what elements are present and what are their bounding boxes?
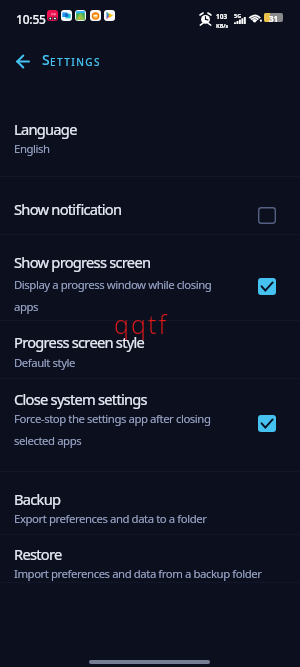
staticText: Show notification	[14, 199, 122, 219]
button[interactable]	[0, 382, 300, 438]
staticText: KB/s	[216, 22, 229, 29]
staticText: Close system settings	[14, 389, 147, 409]
button[interactable]	[0, 325, 300, 382]
staticText: Default style	[14, 355, 264, 371]
button[interactable]: Toggle	[258, 415, 276, 432]
button[interactable]: Toggle	[258, 207, 276, 224]
staticText: Import preferences and data from a backu…	[14, 566, 264, 582]
staticText: English	[14, 141, 264, 157]
button[interactable]	[0, 112, 300, 168]
staticText: 5G	[234, 12, 242, 19]
staticText: Language	[14, 119, 77, 139]
staticText: Show progress screen	[14, 252, 151, 272]
button[interactable]: Toggle	[258, 278, 276, 295]
staticText: Progress screen style	[14, 332, 144, 352]
staticText: 31	[269, 13, 279, 22]
staticText: 10:55	[16, 11, 46, 27]
staticText: Backup	[14, 489, 61, 509]
staticText: ETTINGS	[50, 55, 101, 69]
button[interactable]	[0, 537, 300, 593]
staticText: qqtf	[114, 307, 169, 341]
staticText: S	[42, 50, 50, 69]
button[interactable]	[0, 482, 300, 538]
staticText: Export preferences and data to a folder	[14, 511, 264, 527]
button[interactable]	[0, 192, 300, 226]
staticText: 103	[216, 12, 228, 21]
button[interactable]	[0, 245, 300, 304]
staticText: Display a progress window while closing …	[14, 277, 226, 314]
staticText: Restore	[14, 544, 62, 564]
button[interactable]: Back	[8, 46, 38, 76]
staticText: Force-stop the settings app after closin…	[14, 411, 232, 448]
